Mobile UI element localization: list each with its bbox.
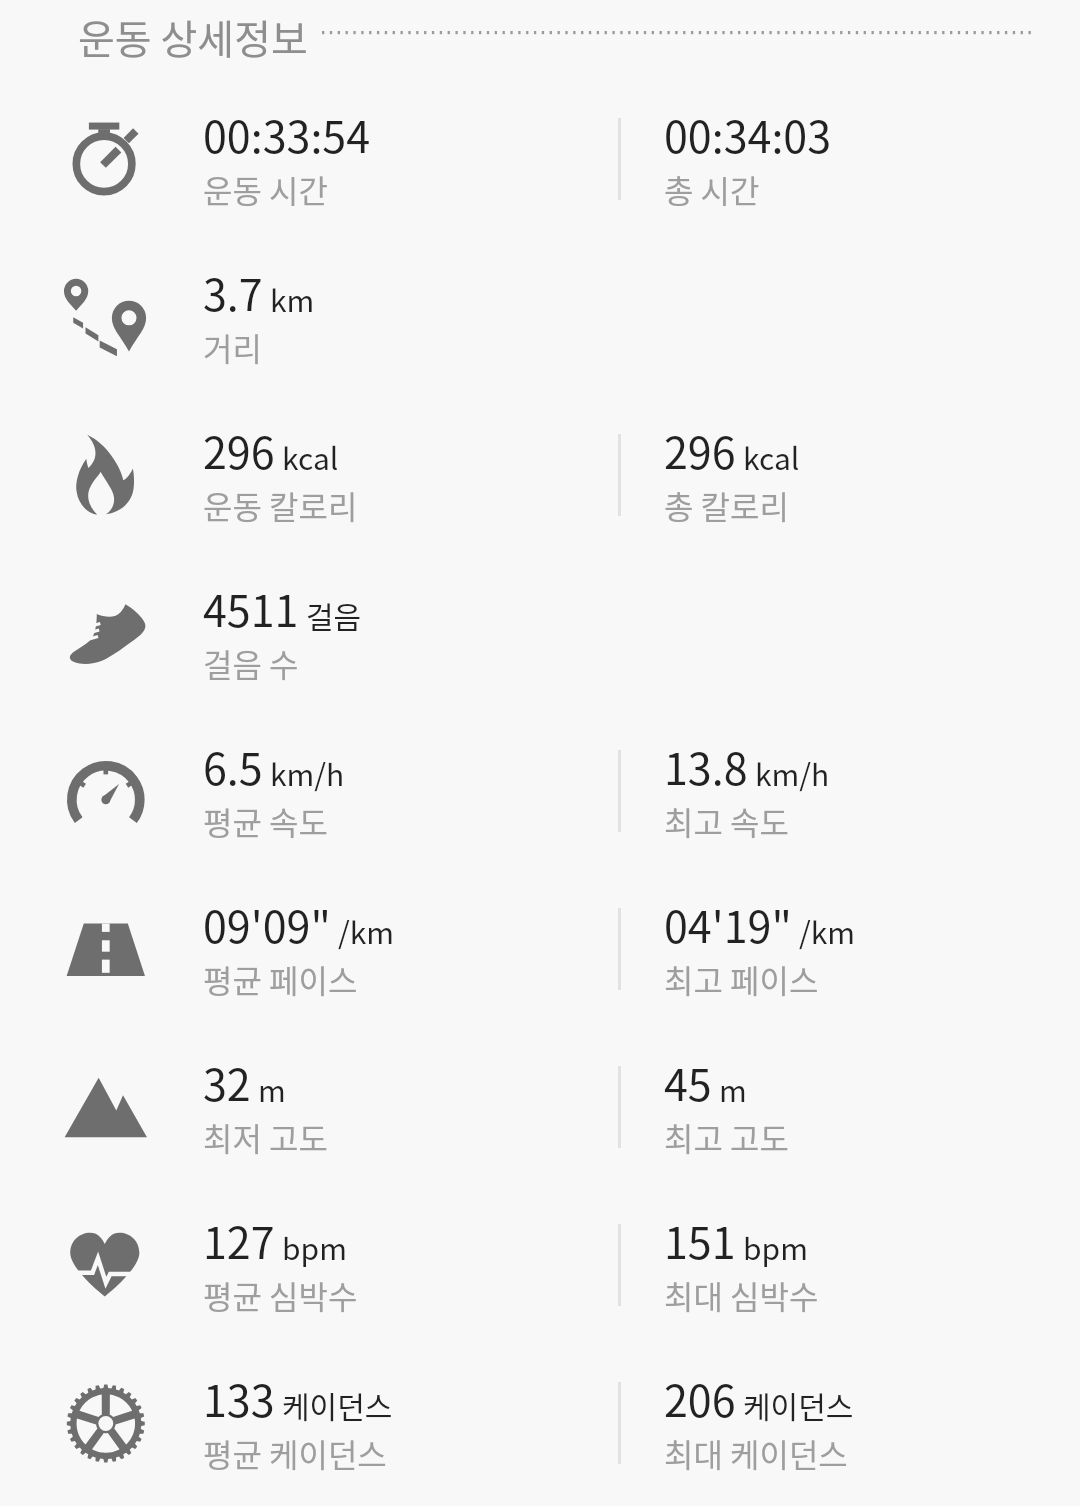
staticText: kcal	[282, 435, 339, 478]
staticText: 걸음 수	[203, 640, 299, 686]
button[interactable]: Cadence	[0, 1344, 1080, 1502]
staticText: 151	[664, 1209, 736, 1271]
staticText: 평균 페이스	[203, 956, 358, 1002]
staticText: km/h	[755, 751, 830, 794]
staticText: 206	[664, 1367, 736, 1429]
other: Speed	[0, 712, 203, 870]
staticText: 4511	[203, 577, 299, 639]
staticText: 45	[664, 1051, 712, 1113]
staticText: kcal	[743, 435, 800, 478]
staticText: 평균 심박수	[203, 1272, 358, 1318]
staticText: 최고 페이스	[664, 956, 819, 1002]
staticText: 00:34:03	[664, 103, 832, 165]
staticText: km	[270, 277, 315, 320]
other: Steps	[0, 554, 203, 712]
button[interactable]: Speed	[0, 712, 1080, 870]
other: Workout time	[0, 80, 203, 238]
staticText: 09'09"	[203, 893, 331, 955]
staticText: 케이던스	[282, 1383, 393, 1426]
staticText: bpm	[743, 1225, 808, 1268]
staticText: m	[719, 1067, 747, 1110]
button[interactable]: Pace	[0, 870, 1080, 1028]
other: Pace	[0, 870, 203, 1028]
staticText: 296	[664, 419, 736, 481]
other: Calories	[0, 396, 203, 554]
staticText: 최고 고도	[664, 1114, 789, 1160]
staticText: 운동 칼로리	[203, 482, 358, 528]
other: Heart rate	[0, 1186, 203, 1344]
staticText: 296	[203, 419, 275, 481]
staticText: 32	[203, 1051, 251, 1113]
staticText: 케이던스	[743, 1383, 854, 1426]
staticText: 걸음	[306, 593, 362, 636]
staticText: 6.5	[203, 735, 263, 797]
staticText: 거리	[203, 324, 262, 370]
button[interactable]: Workout time	[0, 80, 1080, 238]
other: Distance	[0, 238, 203, 396]
staticText: km/h	[270, 751, 345, 794]
staticText: 운동 시간	[203, 166, 328, 212]
staticText: /km	[338, 909, 395, 952]
staticText: m	[258, 1067, 286, 1110]
staticText: 최대 케이던스	[664, 1430, 848, 1476]
staticText: 최저 고도	[203, 1114, 328, 1160]
button[interactable]: Steps	[0, 554, 1080, 712]
staticText: 총 칼로리	[664, 482, 789, 528]
button[interactable]: Elevation	[0, 1028, 1080, 1186]
staticText: 최대 심박수	[664, 1272, 819, 1318]
staticText: 평균 속도	[203, 798, 328, 844]
staticText: 00:33:54	[203, 103, 371, 165]
staticText: 133	[203, 1367, 275, 1429]
staticText: /km	[799, 909, 856, 952]
staticText: 3.7	[203, 261, 263, 323]
staticText: 운동 상세정보	[78, 8, 308, 66]
staticText: 04'19"	[664, 893, 792, 955]
staticText: 총 시간	[664, 166, 760, 212]
button[interactable]: Calories	[0, 396, 1080, 554]
other: Elevation	[0, 1028, 203, 1186]
button[interactable]: Distance	[0, 238, 1080, 396]
staticText: 평균 케이던스	[203, 1430, 387, 1476]
staticText: 최고 속도	[664, 798, 789, 844]
staticText: bpm	[282, 1225, 347, 1268]
staticText: 13.8	[664, 735, 748, 797]
button[interactable]: Heart rate	[0, 1186, 1080, 1344]
staticText: 127	[203, 1209, 275, 1271]
other: Cadence	[0, 1344, 203, 1502]
